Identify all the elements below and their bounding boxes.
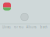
staticText: For You (14, 25, 24, 29)
staticText: Library (2, 25, 10, 29)
staticText: Albums (26, 25, 36, 29)
button[interactable]: Record (21, 13, 28, 21)
button[interactable]: Photo (3, 2, 11, 10)
staticText: Search (40, 25, 48, 29)
